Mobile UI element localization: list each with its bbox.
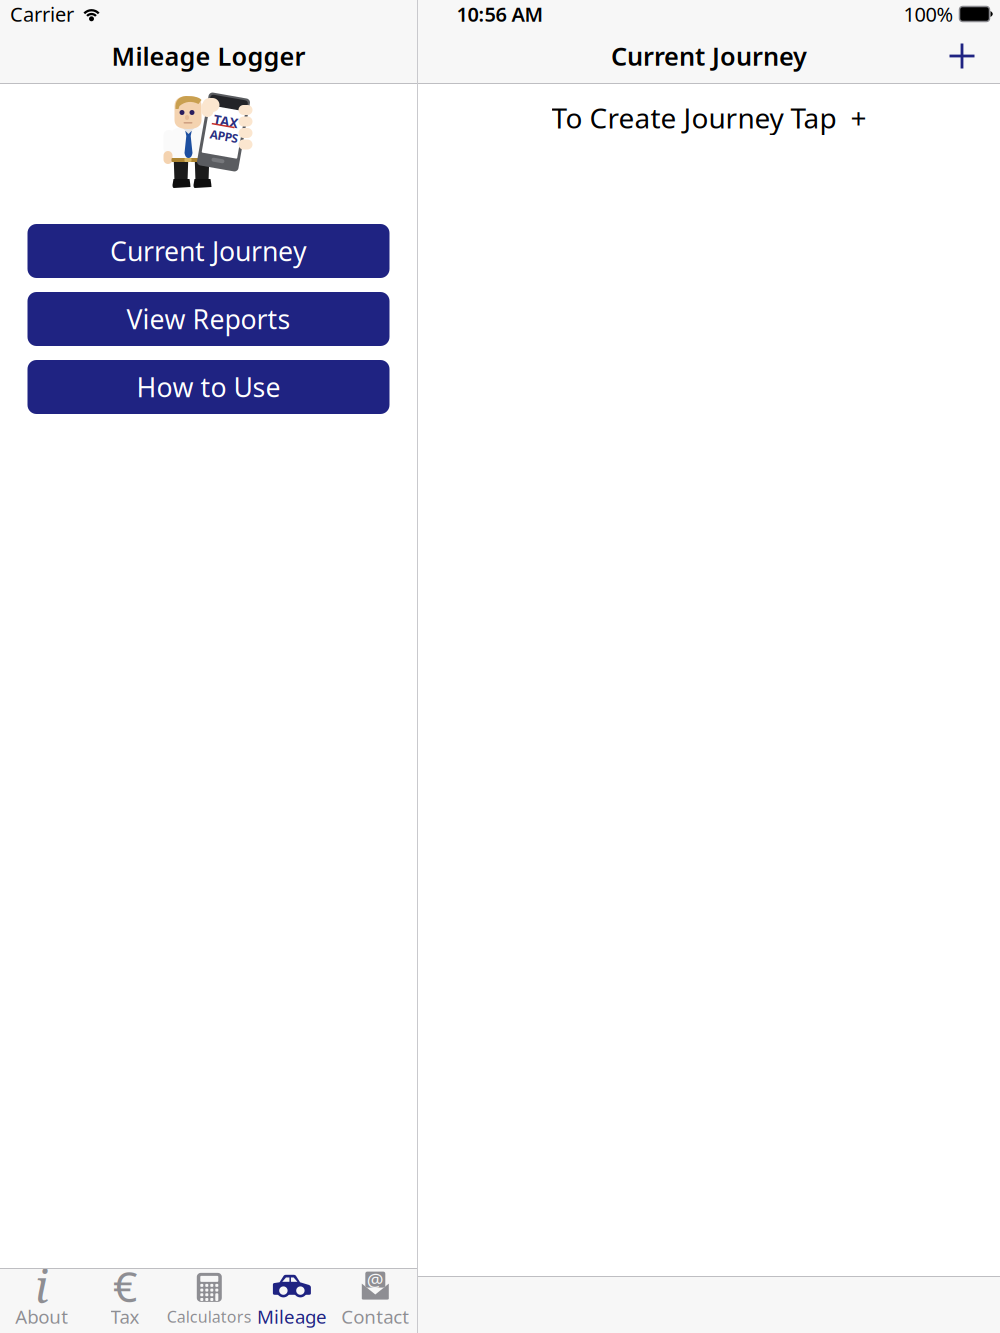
staticText: € [113, 1257, 137, 1314]
staticText: TAX [211, 112, 236, 130]
staticText: Tax [111, 1304, 140, 1329]
button[interactable]: Current Journey [27, 224, 389, 278]
button[interactable]: i [0, 1268, 83, 1333]
staticText: Calculators [167, 1306, 252, 1327]
staticText: 100% [903, 1, 953, 27]
staticText: View Reports [126, 301, 290, 337]
staticText: Mileage Logger [111, 39, 305, 73]
staticText: Current Journey [611, 39, 807, 73]
button[interactable]: View Reports [27, 292, 389, 346]
staticText: About [15, 1304, 68, 1329]
staticText: Carrier [10, 1, 74, 27]
button[interactable]: Mileage [250, 1268, 334, 1333]
button[interactable]: @ [334, 1268, 417, 1333]
staticText: Contact [341, 1304, 409, 1329]
staticText: APPS [210, 128, 239, 144]
staticText: i [35, 1255, 49, 1316]
staticText: Mileage [257, 1304, 327, 1329]
button[interactable]: € [83, 1268, 167, 1333]
staticText: @ [367, 1267, 384, 1292]
staticText: Current Journey [110, 233, 307, 269]
button[interactable]: Calculators [167, 1268, 250, 1333]
staticText: To Create Journey Tap + [551, 99, 866, 136]
button[interactable]: Add journey [946, 40, 978, 72]
staticText: How to Use [136, 369, 280, 405]
staticText: 10:56 AM [456, 1, 543, 27]
button[interactable]: How to Use [27, 360, 389, 414]
